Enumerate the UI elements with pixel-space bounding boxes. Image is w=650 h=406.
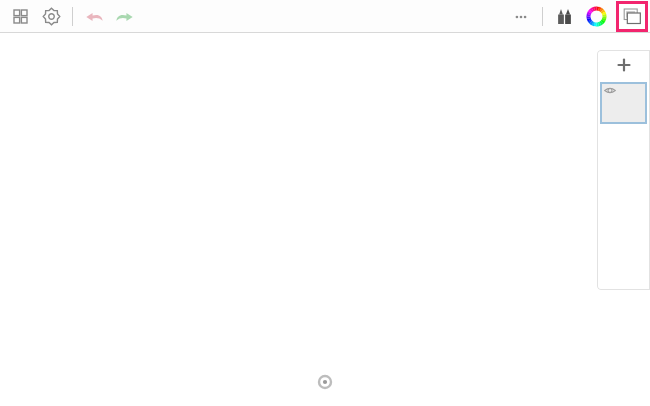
button[interactable]: Layer 1 xyxy=(600,82,647,124)
button[interactable]: Canvas handle xyxy=(317,374,333,390)
button[interactable]: Gallery xyxy=(8,4,33,29)
button[interactable]: Undo xyxy=(82,5,106,29)
button[interactable]: Color xyxy=(584,4,609,29)
button[interactable]: More options xyxy=(509,5,533,29)
button[interactable]: Layers xyxy=(619,4,645,29)
button[interactable]: Redo xyxy=(113,5,137,29)
button[interactable]: Add layer xyxy=(597,50,650,80)
button[interactable]: Brushes xyxy=(552,4,577,29)
button[interactable]: Settings xyxy=(39,4,64,29)
